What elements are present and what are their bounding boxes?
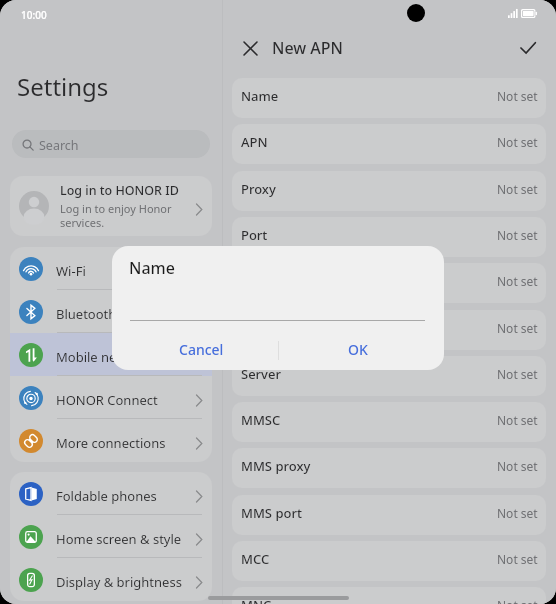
button[interactable]: Cancel: [112, 321, 278, 370]
staticText: Not set: [497, 551, 538, 567]
button[interactable]: Password: [232, 310, 546, 350]
button[interactable]: More connections: [10, 419, 212, 462]
staticText: Display & brightness: [56, 573, 194, 591]
button[interactable]: Wi-Fi: [10, 247, 212, 290]
staticText: Wi-Fi: [56, 262, 194, 280]
staticText: Not set: [497, 597, 538, 604]
staticText: Not set: [497, 320, 538, 336]
button[interactable]: MMS port: [232, 495, 546, 535]
button[interactable]: MMSC: [232, 402, 546, 442]
staticText: Not set: [497, 412, 538, 428]
button[interactable]: Save: [513, 33, 543, 63]
staticText: MMSC: [241, 411, 497, 429]
staticText: Not set: [497, 505, 538, 521]
staticText: Name: [241, 87, 497, 105]
staticText: OK: [348, 340, 368, 359]
button[interactable]: MMS proxy: [232, 448, 546, 488]
staticText: APN: [241, 133, 497, 151]
button[interactable]: Server: [232, 356, 546, 396]
staticText: More connections: [56, 434, 194, 452]
staticText: Settings: [17, 70, 109, 103]
staticText: MNC: [241, 596, 497, 604]
button[interactable]: Mobile network: [10, 333, 212, 376]
staticText: Not set: [497, 366, 538, 382]
staticText: HONOR Connect: [56, 391, 194, 409]
staticText: Name: [129, 257, 175, 279]
staticText: 10:00: [21, 8, 47, 22]
staticText: Not set: [497, 181, 538, 197]
staticText: Not set: [497, 273, 538, 289]
staticText: Home screen & style: [56, 530, 194, 548]
button[interactable]: Close: [235, 33, 265, 63]
button[interactable]: MNC: [232, 587, 546, 604]
button[interactable]: APN: [232, 124, 546, 164]
staticText: Search: [39, 137, 79, 154]
staticText: Username: [241, 272, 497, 290]
staticText: Port: [241, 226, 497, 244]
button[interactable]: Proxy: [232, 171, 546, 211]
staticText: Mobile network: [56, 348, 194, 366]
button[interactable]: OK: [278, 321, 444, 370]
staticText: Cancel: [179, 340, 224, 359]
staticText: MMS port: [241, 504, 497, 522]
button[interactable]: Bluetooth: [10, 290, 212, 333]
button[interactable]: Port: [232, 217, 546, 257]
staticText: Not set: [497, 88, 538, 104]
button[interactable]: MCC: [232, 541, 546, 581]
staticText: Proxy: [241, 180, 497, 198]
staticText: MMS proxy: [241, 457, 497, 475]
staticText: MCC: [241, 550, 497, 568]
button[interactable]: Home screen & style: [10, 515, 212, 558]
staticText: Not set: [497, 227, 538, 243]
staticText: New APN: [272, 37, 344, 59]
button[interactable]: HONOR Connect: [10, 376, 212, 419]
button[interactable]: Foldable phones: [10, 472, 212, 515]
button[interactable]: Display & brightness: [10, 558, 212, 601]
staticText: Password: [241, 319, 497, 337]
staticText: Log in to HONOR ID: [60, 182, 179, 199]
button[interactable]: Log in to HONOR ID: [10, 176, 212, 236]
staticText: Server: [241, 365, 497, 383]
staticText: Log in to enjoy Honor services.: [60, 201, 194, 230]
button[interactable]: Name: [232, 78, 546, 118]
button[interactable]: Username: [232, 263, 546, 303]
staticText: Foldable phones: [56, 487, 194, 505]
staticText: Bluetooth: [56, 305, 194, 323]
button[interactable]: Search: [12, 130, 210, 158]
staticText: Not set: [497, 458, 538, 474]
staticText: Not set: [497, 134, 538, 150]
